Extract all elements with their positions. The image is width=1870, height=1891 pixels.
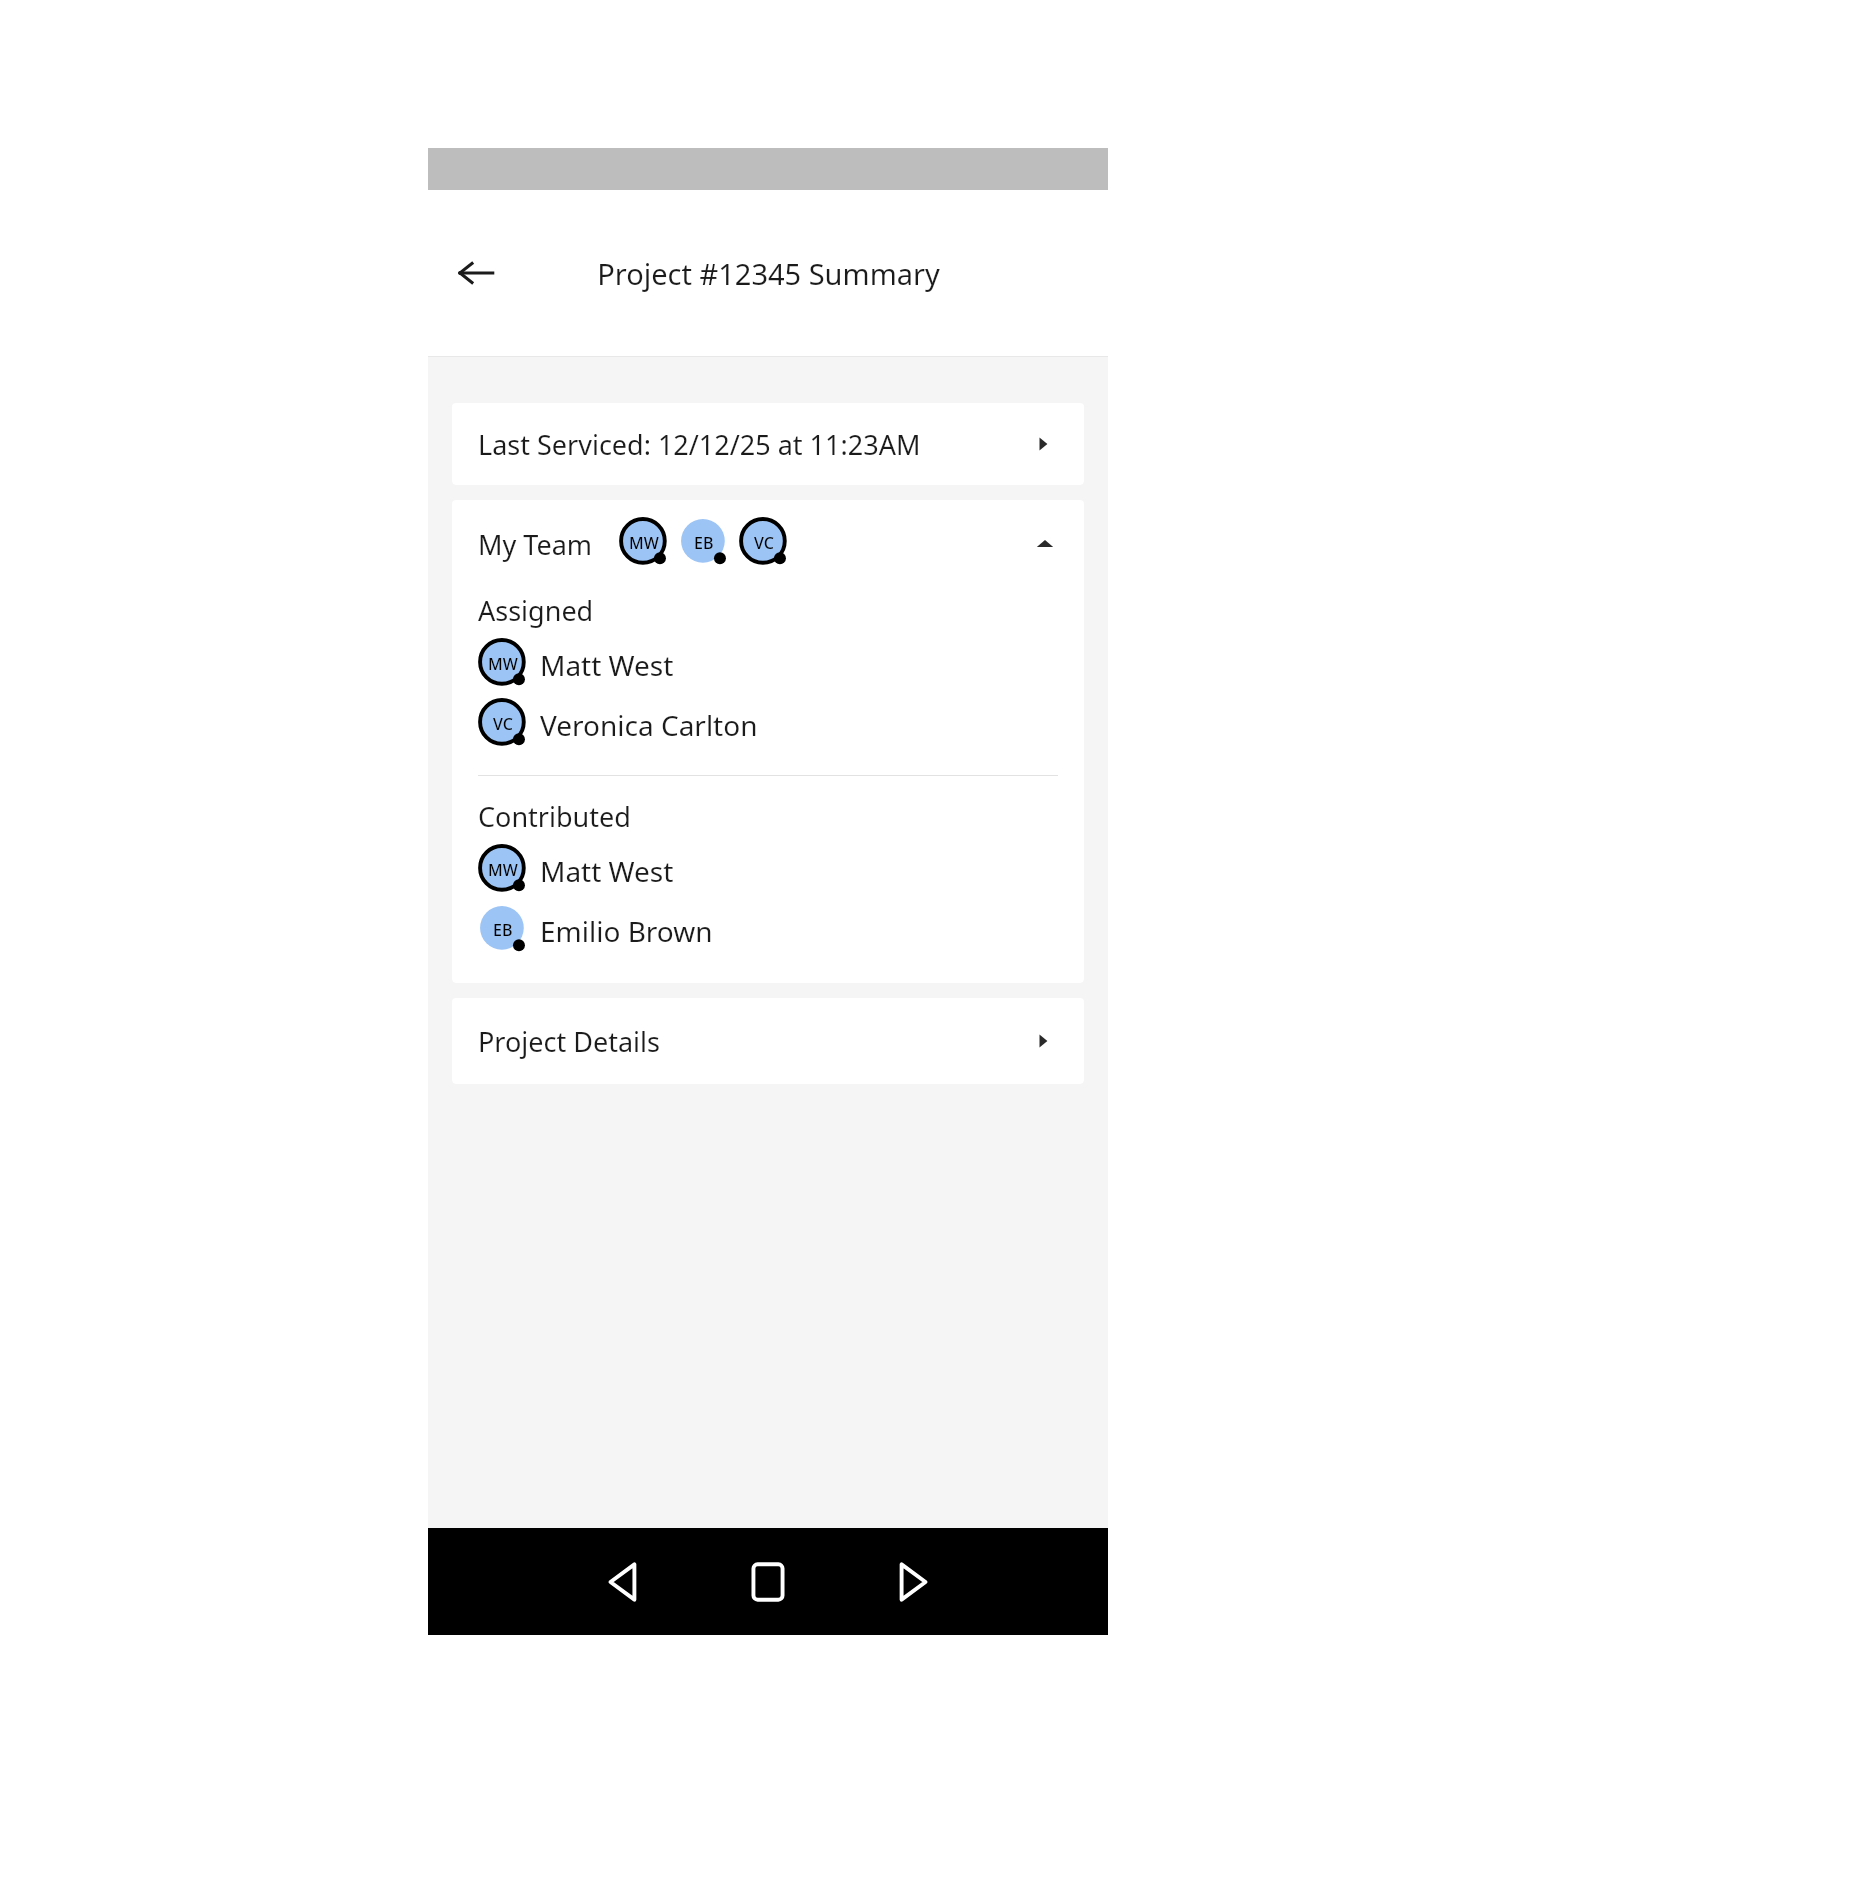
button[interactable]: MW [452,635,1084,695]
staticText: EB [493,919,513,941]
button[interactable]: EB [452,901,1084,961]
other: Collapse My Team [1030,529,1060,559]
other: Open last serviced details [1028,429,1058,459]
staticText: Assigned [478,592,594,629]
staticText: Last Serviced: 12/12/25 at 11:23AM [478,426,921,463]
staticText: VC [493,713,513,735]
staticText: My Team [478,526,593,563]
other: Open project details [1028,1026,1058,1056]
button[interactable]: MW [452,841,1084,901]
staticText: EB [694,532,714,554]
staticText: Project #12345 Summary [597,254,940,293]
button[interactable]: Back [588,1546,660,1618]
button[interactable]: Recents [876,1546,948,1618]
button[interactable]: Project Details [452,998,1084,1084]
staticText: Matt West [540,852,674,890]
button[interactable]: Last Serviced: 12/12/25 at 11:23AM [452,403,1084,485]
staticText: Project Details [478,1023,660,1060]
button[interactable]: Back [448,245,504,301]
staticText: Emilio Brown [540,912,713,950]
staticText: MW [488,859,518,881]
staticText: Veronica Carlton [540,706,758,744]
staticText: Contributed [478,798,631,835]
button[interactable]: My Team [452,500,1084,588]
button[interactable]: Home [732,1546,804,1618]
staticText: MW [629,532,659,554]
staticText: VC [754,532,774,554]
staticText: Matt West [540,646,674,684]
button[interactable]: VC [452,695,1084,755]
staticText: MW [488,653,518,675]
